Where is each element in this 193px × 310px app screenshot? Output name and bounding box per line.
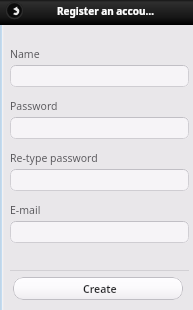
button[interactable]: Create [13, 277, 183, 300]
staticText: Name [10, 47, 40, 61]
button[interactable] [10, 221, 189, 243]
button[interactable] [10, 117, 189, 139]
button[interactable]: Back [5, 1, 24, 20]
staticText: Re-type password [10, 151, 98, 165]
button[interactable] [10, 169, 189, 191]
staticText: Create [83, 282, 117, 296]
staticText: Register an accou… [57, 4, 154, 18]
button[interactable] [10, 65, 189, 87]
staticText: Password [10, 99, 58, 113]
staticText: E-mail [10, 203, 41, 217]
